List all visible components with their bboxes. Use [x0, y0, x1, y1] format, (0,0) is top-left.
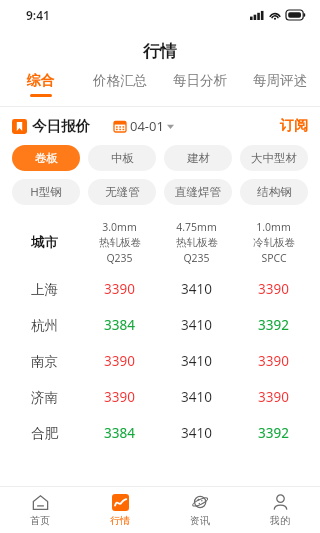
staticText: 04-01 [130, 117, 164, 135]
staticText: 建材 [187, 151, 210, 165]
button[interactable]: 上海 [8, 271, 312, 307]
staticText: 结构钢 [257, 185, 292, 199]
staticText: 3392 [258, 316, 289, 334]
staticText: 合肥 [31, 425, 58, 442]
button[interactable]: 卷板 [12, 145, 80, 171]
button[interactable]: 大中型材 [240, 145, 308, 171]
staticText: 3390 [104, 388, 135, 406]
button[interactable]: 杭州 [8, 307, 312, 343]
staticText: 城市 [31, 234, 58, 251]
button[interactable]: 每日分析 [160, 72, 240, 106]
button[interactable]: 首页 [0, 487, 80, 533]
staticText: 3384 [104, 424, 135, 442]
staticText: 3410 [181, 424, 212, 442]
staticText: 济南 [31, 389, 58, 406]
other: 资讯 [192, 494, 209, 511]
staticText: 冷轧板卷 [253, 236, 295, 249]
staticText: 订阅 [280, 117, 308, 135]
button[interactable]: 价格汇总 [80, 72, 160, 106]
button[interactable]: 订阅 [280, 117, 308, 135]
staticText: 综合 [27, 72, 54, 89]
staticText: 首页 [30, 514, 50, 527]
staticText: 我的 [270, 514, 290, 527]
button[interactable]: H型钢 [12, 179, 80, 205]
staticText: H型钢 [30, 184, 62, 200]
staticText: 上海 [31, 281, 58, 298]
button[interactable]: 中板 [88, 145, 156, 171]
staticText: SPCC [261, 251, 287, 265]
button[interactable]: 南京 [8, 343, 312, 379]
other: 首页 [32, 494, 49, 511]
other: 我的 [272, 494, 289, 511]
staticText: 3410 [181, 352, 212, 370]
button[interactable]: 每周评述 [240, 72, 320, 106]
staticText: 3.0mm [102, 220, 137, 234]
staticText: 3410 [181, 388, 212, 406]
button[interactable]: 济南 [8, 379, 312, 415]
staticText: 直缝焊管 [175, 185, 221, 199]
button[interactable]: 直缝焊管 [164, 179, 232, 205]
staticText: 3392 [258, 424, 289, 442]
button[interactable]: 资讯 [160, 487, 240, 533]
button[interactable]: 无缝管 [88, 179, 156, 205]
button[interactable]: 04-01 [114, 117, 174, 135]
button[interactable]: 建材 [164, 145, 232, 171]
staticText: 行情 [110, 514, 130, 527]
button[interactable]: 行情 [80, 487, 160, 533]
staticText: 南京 [31, 353, 58, 370]
staticText: Q235 [183, 251, 210, 265]
staticText: 杭州 [31, 317, 58, 334]
staticText: 1.0mm [256, 220, 291, 234]
staticText: Q235 [106, 251, 133, 265]
other: 行情 [112, 494, 129, 511]
staticText: 每日分析 [173, 72, 227, 89]
staticText: 行情 [143, 41, 177, 62]
staticText: 3390 [104, 280, 135, 298]
button[interactable]: 合肥 [8, 415, 312, 451]
staticText: 热轧板卷 [176, 236, 218, 249]
staticText: 大中型材 [251, 151, 297, 165]
staticText: 3390 [258, 352, 289, 370]
staticText: 3390 [104, 352, 135, 370]
staticText: 4.75mm [176, 220, 217, 234]
staticText: 卷板 [35, 151, 58, 165]
staticText: 热轧板卷 [99, 236, 141, 249]
staticText: 资讯 [190, 514, 210, 527]
staticText: 每周评述 [253, 72, 307, 89]
staticText: 价格汇总 [93, 72, 147, 89]
staticText: 3410 [181, 280, 212, 298]
button[interactable]: 结构钢 [240, 179, 308, 205]
button[interactable]: 我的 [240, 487, 320, 533]
staticText: 3384 [104, 316, 135, 334]
staticText: 3390 [258, 280, 289, 298]
button[interactable]: 综合 [0, 72, 80, 106]
staticText: 今日报价 [32, 117, 90, 135]
staticText: 无缝管 [105, 185, 140, 199]
staticText: 3410 [181, 316, 212, 334]
staticText: 3390 [258, 388, 289, 406]
staticText: 9:41 [26, 7, 50, 23]
staticText: 中板 [111, 151, 134, 165]
